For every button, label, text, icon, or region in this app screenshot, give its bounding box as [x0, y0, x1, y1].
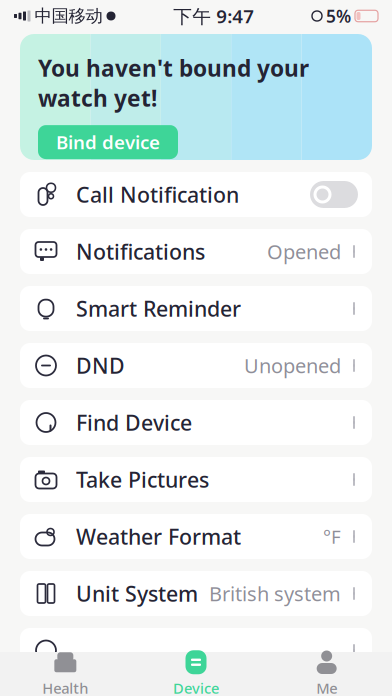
staticText: Unopened	[244, 352, 341, 379]
button[interactable]: Me	[261, 652, 392, 696]
staticText: British system	[209, 580, 341, 607]
staticText: Call Notification	[76, 180, 239, 209]
staticText: DND	[76, 351, 125, 380]
staticText: Opened	[267, 238, 341, 265]
staticText: Bind device	[56, 130, 160, 154]
button[interactable]: Health	[0, 652, 131, 696]
staticText: You haven't bound your watch yet!	[38, 53, 309, 113]
button[interactable]: Call Notification	[20, 172, 372, 217]
button[interactable]: Weather Format	[20, 514, 372, 559]
staticText: Unit System	[76, 579, 198, 608]
button[interactable]: Take Pictures	[20, 457, 372, 502]
staticText: Device	[173, 678, 219, 696]
staticText: 5%	[326, 4, 351, 27]
button[interactable]: Bind device	[38, 125, 178, 159]
button[interactable]: Smart Reminder	[20, 286, 372, 331]
staticText: Take Pictures	[76, 465, 209, 494]
staticText: Me	[316, 678, 337, 696]
staticText: 中国移动	[34, 5, 102, 27]
staticText: Smart Reminder	[76, 294, 241, 323]
staticText: Notifications	[76, 237, 205, 266]
staticText: 下午 9:47	[173, 4, 254, 28]
button[interactable]: DND	[20, 343, 372, 388]
button[interactable]: Device	[131, 652, 261, 696]
staticText: Find Device	[76, 408, 192, 437]
button[interactable]: Unit System	[20, 571, 372, 616]
staticText: Weather Format	[76, 522, 241, 551]
button[interactable]	[20, 628, 372, 673]
button[interactable]: Find Device	[20, 400, 372, 445]
staticText: Health	[42, 678, 88, 696]
staticText: °F	[323, 524, 341, 549]
button[interactable]: Notifications	[20, 229, 372, 274]
